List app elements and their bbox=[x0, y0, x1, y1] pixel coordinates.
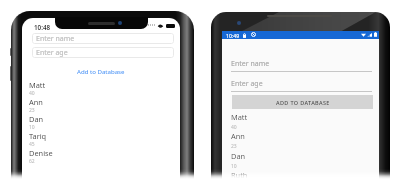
staticText: 40 bbox=[231, 124, 237, 131]
staticText: Matt bbox=[231, 112, 248, 122]
button[interactable]: Add to Database bbox=[22, 65, 180, 77]
staticText: Enter name bbox=[36, 34, 75, 44]
staticText: Enter age bbox=[36, 48, 68, 58]
button[interactable]: Matt bbox=[229, 112, 372, 131]
staticText: Ruth bbox=[231, 170, 248, 180]
staticText: Ann bbox=[29, 97, 43, 107]
button[interactable]: Enter name bbox=[32, 33, 174, 44]
button[interactable]: Dan bbox=[229, 151, 372, 170]
staticText: Tariq bbox=[29, 131, 47, 141]
staticText: 23 bbox=[29, 107, 35, 114]
staticText: Enter age bbox=[231, 79, 263, 89]
button[interactable]: Matt bbox=[29, 80, 179, 97]
button[interactable]: Enter name bbox=[231, 59, 372, 72]
button[interactable]: Enter age bbox=[231, 79, 372, 92]
staticText: Matt bbox=[29, 80, 46, 90]
staticText: 62 bbox=[29, 158, 35, 165]
button[interactable]: Tariq bbox=[29, 131, 179, 148]
staticText: Ann bbox=[231, 131, 245, 141]
button[interactable]: Enter age bbox=[32, 47, 174, 58]
staticText: 23 bbox=[231, 143, 237, 150]
staticText: Add to Database bbox=[77, 67, 125, 75]
button[interactable]: Ann bbox=[29, 97, 179, 114]
button[interactable]: Ann bbox=[229, 131, 372, 150]
button[interactable]: Denise bbox=[29, 148, 179, 165]
staticText: Enter name bbox=[231, 59, 270, 69]
staticText: 10 bbox=[231, 163, 237, 170]
staticText: 45 bbox=[29, 141, 35, 148]
staticText: 40 bbox=[29, 90, 35, 97]
staticText: 10 bbox=[29, 124, 35, 131]
staticText: ADD TO DATABASE bbox=[276, 99, 330, 106]
staticText: Dan bbox=[231, 151, 246, 161]
button[interactable]: Dan bbox=[29, 114, 179, 131]
staticText: Denise bbox=[29, 148, 53, 158]
staticText: 10:48 bbox=[34, 23, 51, 32]
button[interactable]: ADD TO DATABASE bbox=[232, 95, 373, 109]
staticText: Dan bbox=[29, 114, 44, 124]
button[interactable]: Ruth bbox=[229, 170, 372, 182]
staticText: 10:49 bbox=[226, 32, 240, 39]
